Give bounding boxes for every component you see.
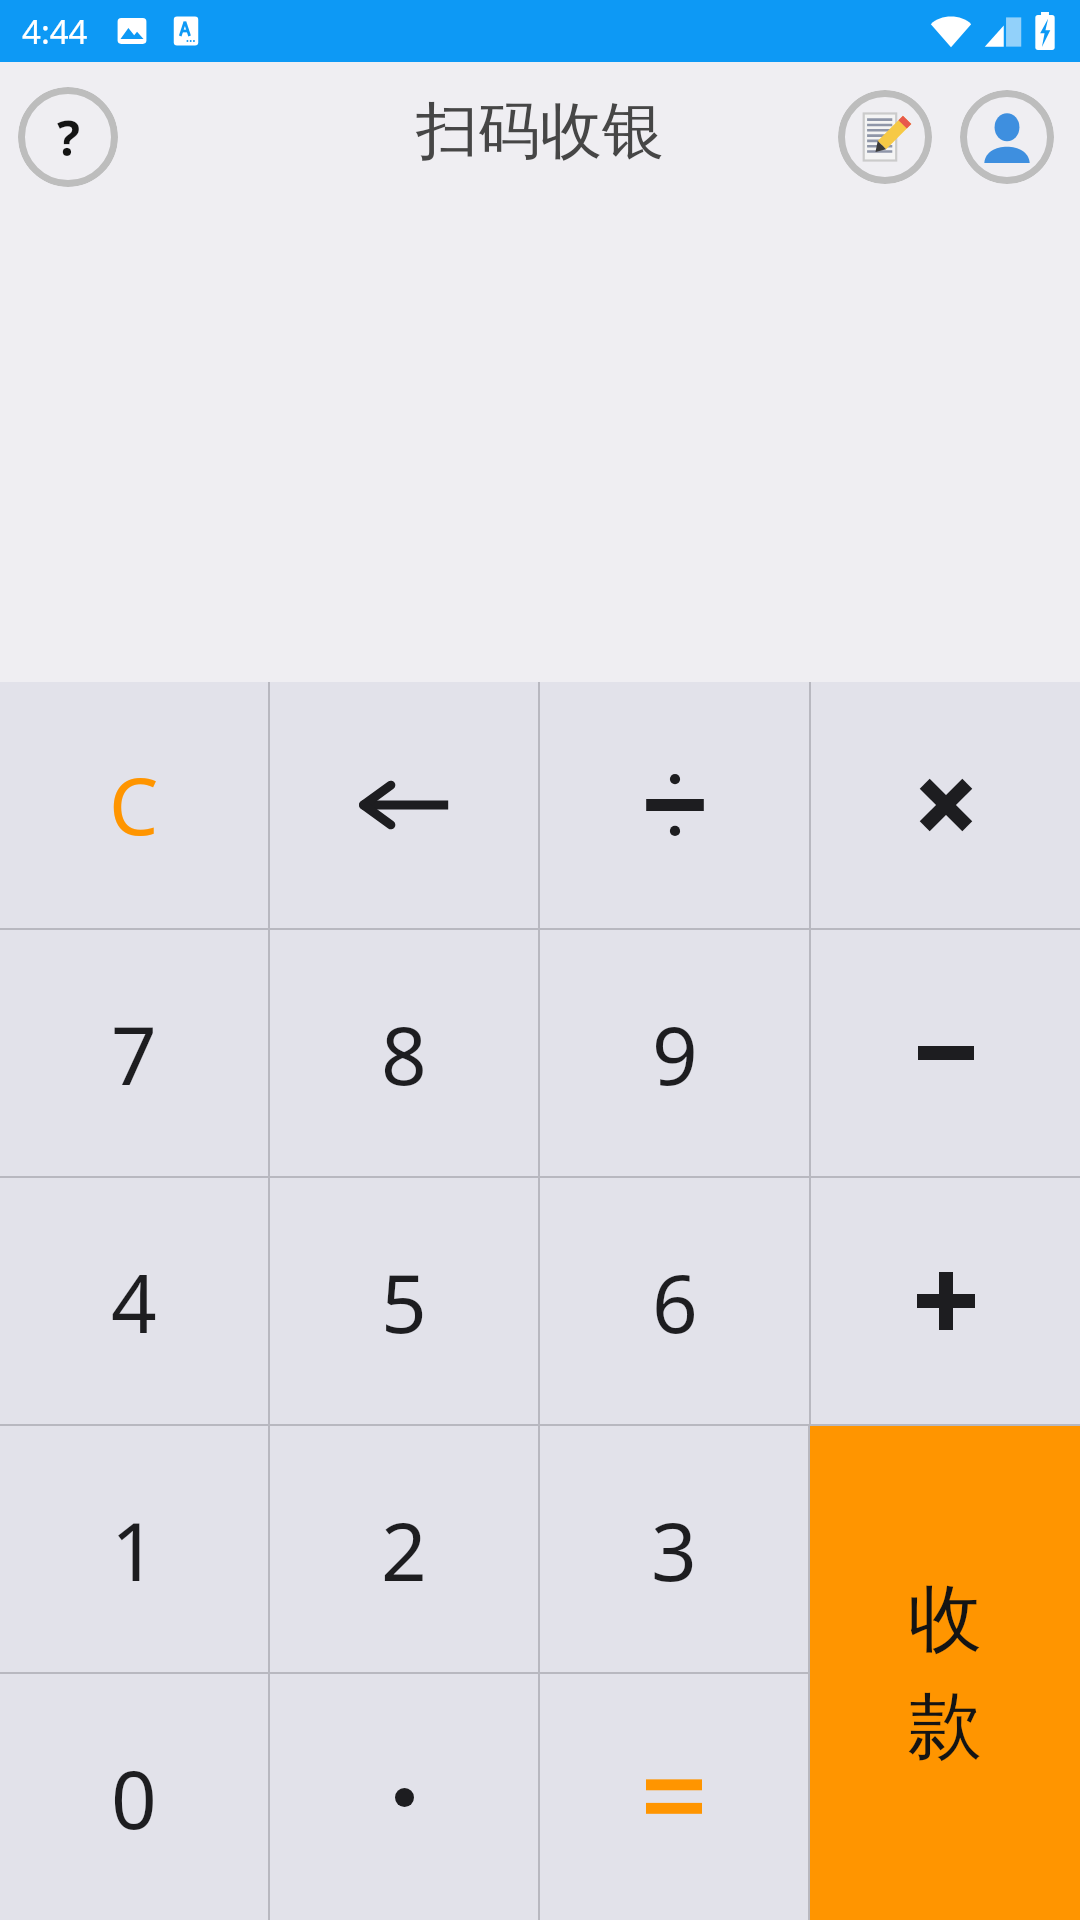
staticText: 7 [111,999,157,1108]
button[interactable]: Edit order [838,90,932,184]
staticText: 收 [908,1573,982,1666]
staticText: 款 [908,1680,982,1773]
button[interactable]: Account [960,90,1054,184]
button[interactable]: 2 [270,1426,538,1672]
staticText: 2 [381,1495,427,1604]
button[interactable]: Backspace [270,682,538,928]
button[interactable]: 4 [0,1178,268,1424]
button[interactable]: 1 [0,1426,268,1672]
button[interactable]: 0 [0,1674,268,1920]
staticText: 1 [111,1495,157,1604]
button[interactable]: Plus [811,1178,1080,1424]
button[interactable]: 5 [270,1178,538,1424]
button[interactable]: Divide [540,682,809,928]
staticText: 8 [381,999,427,1108]
button[interactable]: 7 [0,930,268,1176]
staticText: ? [57,105,80,170]
staticText: 4:44 [22,9,88,54]
staticText: 6 [652,1247,698,1356]
button[interactable]: 收 [810,1426,1080,1920]
staticText: 扫码收银 [416,92,664,170]
button[interactable]: C [0,682,268,928]
staticText: C [109,752,159,858]
button[interactable]: Help [18,87,118,187]
button[interactable]: Equals [540,1674,808,1920]
button[interactable]: Multiply [811,682,1080,928]
button[interactable]: 6 [540,1178,809,1424]
staticText: 4 [111,1247,157,1356]
staticText: 9 [652,999,698,1108]
staticText: 3 [651,1495,697,1604]
button[interactable]: 8 [270,930,538,1176]
button[interactable]: 3 [540,1426,808,1672]
staticText: 5 [381,1247,427,1356]
staticText: 0 [111,1743,157,1852]
button[interactable]: 9 [540,930,809,1176]
button[interactable]: Decimal point [270,1674,538,1920]
button[interactable]: Minus [811,930,1080,1176]
